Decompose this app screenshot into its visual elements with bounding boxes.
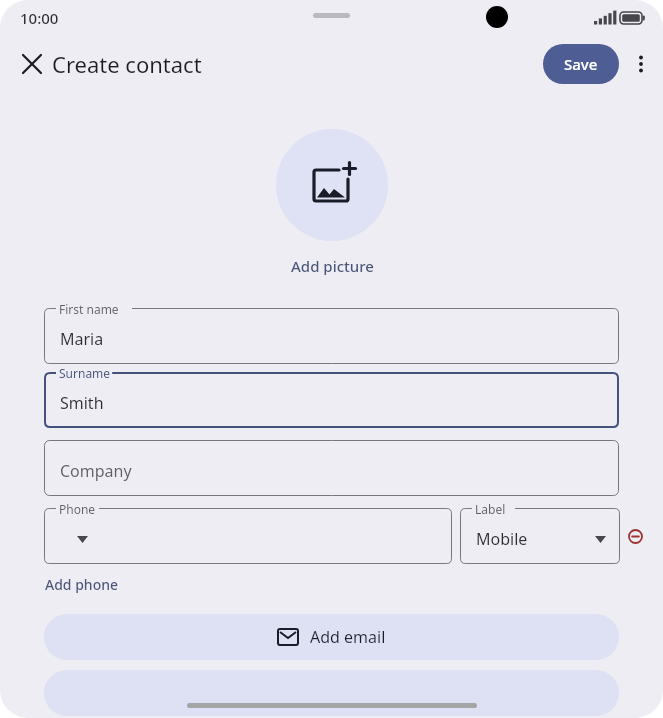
button[interactable] <box>44 670 619 716</box>
button[interactable]: Remove phone <box>628 520 643 552</box>
staticText: Create contact <box>52 49 202 79</box>
staticText: Mobile <box>476 528 528 550</box>
button[interactable]: More options <box>619 42 663 86</box>
staticText: Label <box>475 501 506 517</box>
staticText: Add email <box>310 626 386 648</box>
staticText: Save <box>564 54 598 74</box>
staticText: Add picture <box>291 256 374 276</box>
staticText: Add phone <box>45 575 118 594</box>
staticText: Maria <box>60 328 104 350</box>
staticText: First name <box>59 301 119 317</box>
staticText: Phone <box>59 501 96 517</box>
button[interactable]: Close <box>8 40 56 88</box>
button[interactable]: Add picture <box>276 129 388 241</box>
button[interactable]: Save <box>543 44 619 84</box>
staticText: Company <box>60 460 132 482</box>
button[interactable]: Add phone <box>44 573 119 596</box>
staticText: Smith <box>60 392 104 414</box>
button[interactable]: Add email <box>44 614 619 660</box>
staticText: 10:00 <box>20 8 59 28</box>
staticText: Surname <box>59 365 111 381</box>
